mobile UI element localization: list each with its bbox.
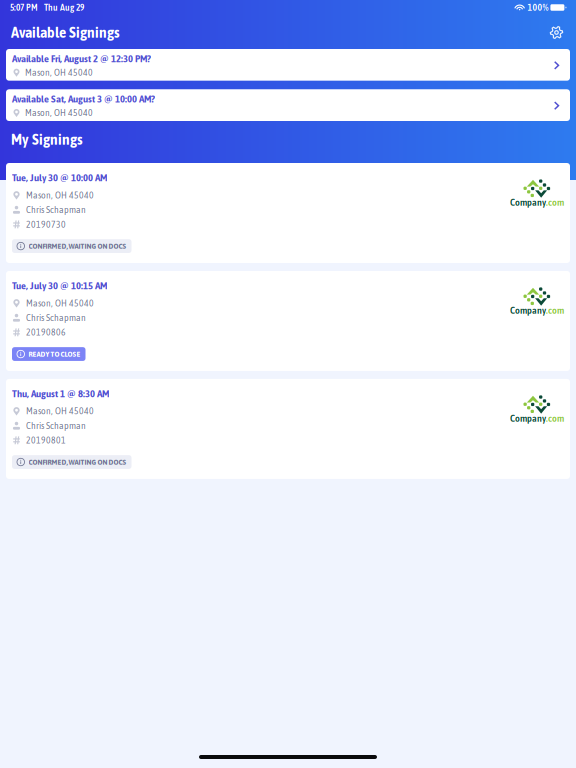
button[interactable]: Available Sat, August 3 @ 10:00 AM?: [6, 89, 570, 121]
staticText: Chris Schapman: [26, 205, 86, 215]
staticText: Company: [510, 305, 546, 316]
button[interactable]: Thu, August 1 @ 8:30 AM: [6, 379, 570, 479]
staticText: .com: [546, 305, 564, 316]
button[interactable]: Available Fri, August 2 @ 12:30 PM?: [6, 49, 570, 81]
staticText: Tue, July 30 @ 10:00 AM: [12, 172, 107, 183]
staticText: Chris Schapman: [26, 313, 86, 323]
staticText: .com: [546, 197, 564, 208]
staticText: Mason, OH 45040: [26, 406, 94, 416]
staticText: Company: [510, 197, 546, 208]
staticText: Mason, OH 45040: [26, 298, 94, 308]
staticText: CONFIRMED, WAITING ON DOCS: [28, 458, 126, 466]
staticText: 20190806: [26, 327, 66, 337]
staticText: 20190730: [26, 219, 66, 229]
staticText: Tue, July 30 @ 10:15 AM: [12, 280, 107, 291]
staticText: My Signings: [11, 131, 83, 148]
staticText: Mason, OH 45040: [25, 67, 93, 78]
button[interactable]: Tue, July 30 @ 10:00 AM: [6, 163, 570, 263]
staticText: READY TO CLOSE: [28, 350, 80, 358]
staticText: Thu Aug 29: [38, 2, 84, 13]
staticText: 20190801: [26, 435, 66, 445]
staticText: Thu, August 1 @ 8:30 AM: [12, 388, 109, 399]
staticText: Chris Schapman: [26, 421, 86, 431]
staticText: Mason, OH 45040: [25, 108, 93, 118]
staticText: .com: [546, 413, 564, 424]
staticText: 100%: [523, 2, 550, 13]
staticText: Available Sat, August 3 @ 10:00 AM?: [12, 93, 155, 105]
staticText: Available Fri, August 2 @ 12:30 PM?: [12, 53, 151, 64]
staticText: 5:07 PM: [10, 2, 38, 13]
button[interactable]: Tue, July 30 @ 10:15 AM: [6, 271, 570, 371]
staticText: CONFIRMED, WAITING ON DOCS: [28, 242, 126, 250]
button[interactable]: Settings: [545, 21, 568, 44]
staticText: Mason, OH 45040: [26, 190, 94, 200]
staticText: Available Signings: [11, 24, 120, 41]
staticText: Company: [510, 413, 546, 424]
